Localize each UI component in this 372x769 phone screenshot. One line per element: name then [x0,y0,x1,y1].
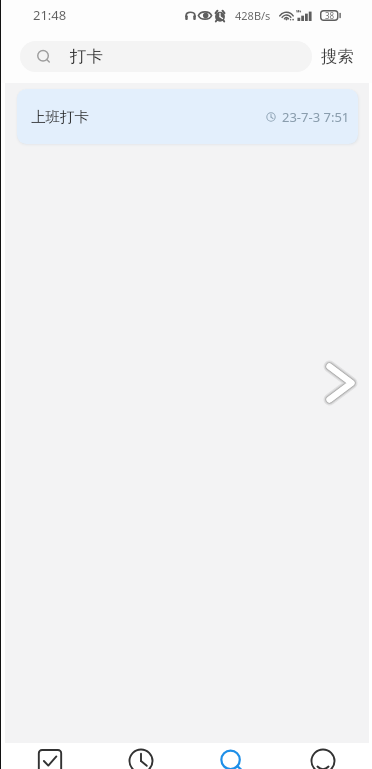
button[interactable]: 搜索 [312,30,370,83]
button[interactable]: Profile [278,743,369,769]
button[interactable]: Next page [320,358,358,408]
staticText: 38 [325,10,335,21]
staticText: 打卡 [70,46,103,67]
staticText: 搜索 [321,46,354,67]
button[interactable]: Search [187,743,278,769]
button[interactable]: 上班打卡 [17,89,358,144]
button[interactable]: History [96,743,187,769]
button[interactable]: 打卡 [20,41,312,72]
staticText: 23-7-3 7:51 [282,108,350,126]
button[interactable]: Tasks [5,743,96,769]
staticText: 21:48 [33,6,67,24]
staticText: 428B/s [235,8,271,23]
staticText: 上班打卡 [31,108,89,126]
